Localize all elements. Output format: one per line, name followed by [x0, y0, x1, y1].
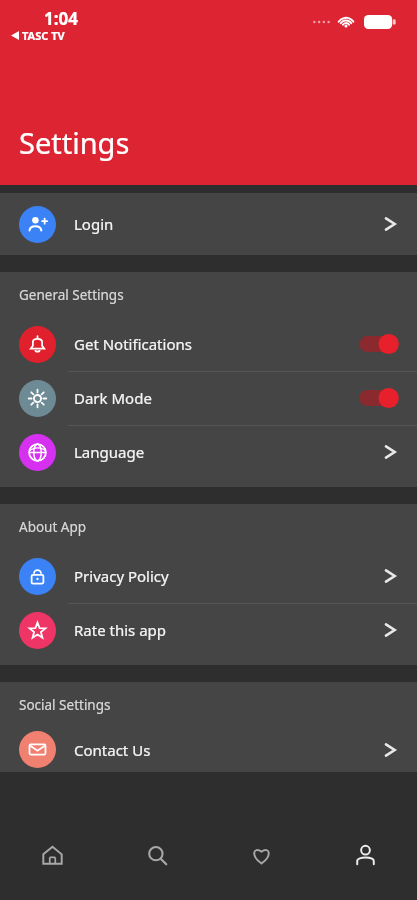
button[interactable]: Home — [0, 822, 105, 900]
button[interactable]: Notifications — [0, 317, 417, 371]
other: Privacy Policy — [19, 558, 56, 595]
staticText: Language — [74, 442, 145, 462]
button[interactable]: Contact Us — [0, 727, 417, 772]
staticText: About App — [19, 518, 87, 536]
staticText: 1:04 — [44, 7, 78, 30]
button[interactable]: Privacy Policy — [0, 549, 417, 603]
staticText: General Settings — [19, 286, 124, 304]
button[interactable]: Search — [105, 822, 209, 900]
button[interactable]: Favorites — [209, 822, 313, 900]
other: Contact Us — [19, 731, 56, 768]
staticText: Get Notifications — [74, 334, 192, 354]
staticText: Dark Mode — [74, 388, 152, 408]
other: Login — [19, 206, 56, 243]
staticText: Contact Us — [74, 740, 151, 760]
staticText: TASC TV — [22, 28, 65, 43]
other: Dark Mode — [19, 380, 56, 417]
staticText: Privacy Policy — [74, 566, 169, 586]
staticText: Login — [74, 214, 114, 234]
other: Rate this app — [19, 612, 56, 649]
button[interactable] — [357, 333, 401, 355]
button[interactable]: Language — [0, 425, 417, 479]
staticText: Settings — [19, 123, 130, 162]
button[interactable]: Dark Mode — [0, 371, 417, 425]
other: Notifications — [19, 326, 56, 363]
button[interactable]: Rate this app — [0, 603, 417, 657]
button[interactable]: Login — [0, 193, 417, 255]
button[interactable] — [357, 387, 401, 409]
staticText: Rate this app — [74, 620, 167, 640]
other: Language — [19, 434, 56, 471]
staticText: Social Settings — [19, 696, 111, 714]
button[interactable]: Profile — [313, 822, 417, 900]
